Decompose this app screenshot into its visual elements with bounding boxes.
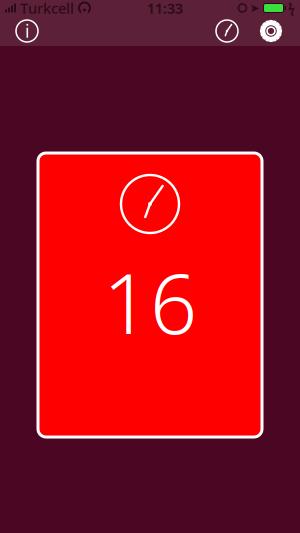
button[interactable]: Timer, 16 — [38, 153, 262, 437]
staticText: ϟ — [288, 0, 295, 16]
staticText: i — [25, 19, 29, 42]
button[interactable]: Info — [10, 16, 44, 46]
button[interactable]: History — [210, 16, 244, 46]
staticText: 11:33 — [147, 0, 183, 18]
staticText: ➤ — [249, 1, 259, 15]
button[interactable]: Settings — [254, 16, 288, 46]
staticText: Turkcell — [20, 0, 74, 18]
staticText: 16 — [103, 247, 197, 357]
